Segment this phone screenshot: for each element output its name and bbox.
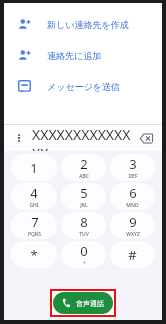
button[interactable]: 0 [61, 241, 106, 268]
staticText: 1 [30, 159, 38, 177]
staticText: WXYZ [126, 231, 140, 238]
staticText: MNO [126, 202, 139, 209]
button[interactable]: 8 [61, 212, 106, 239]
staticText: + [83, 260, 86, 267]
staticText: GHI [29, 202, 39, 209]
staticText: PQRS [28, 231, 41, 238]
staticText: JKL [80, 202, 88, 209]
staticText: 9 [129, 213, 137, 231]
staticText: 5 [80, 184, 88, 202]
staticText: 3 [129, 155, 137, 173]
button[interactable]: 9 [110, 212, 155, 239]
button[interactable]: 音声通話 [53, 292, 113, 314]
button[interactable]: 2 [61, 154, 106, 181]
button[interactable]: 連絡先に追加 [4, 40, 162, 71]
staticText: 0 [80, 242, 88, 260]
button[interactable]: 3 [110, 154, 155, 181]
staticText: 7 [31, 213, 39, 231]
button[interactable]: Backspace [138, 130, 154, 146]
staticText: 2 [80, 155, 88, 173]
staticText: # [128, 246, 137, 264]
button[interactable]: * [11, 241, 57, 268]
staticText: XXXXXXXXXXXXXX [32, 125, 138, 151]
staticText: 4 [30, 184, 38, 202]
button[interactable]: 5 [61, 183, 106, 210]
staticText: DEF [128, 173, 138, 180]
staticText: * [30, 246, 38, 264]
staticText: メッセージを送信 [47, 81, 121, 92]
staticText: 音声通話 [76, 299, 104, 308]
button[interactable]: メッセージを送信 [4, 71, 162, 102]
staticText: 連絡先に追加 [47, 50, 102, 61]
staticText: TUV [79, 231, 89, 238]
button[interactable]: # [110, 241, 155, 268]
button[interactable]: 6 [110, 183, 155, 210]
button[interactable]: 新しい連絡先を作成 [4, 9, 162, 40]
button[interactable]: 1 [11, 154, 57, 181]
staticText: 8 [80, 213, 88, 231]
staticText: ABC [79, 173, 89, 180]
staticText: 新しい連絡先を作成 [47, 19, 129, 30]
button[interactable]: More options [12, 131, 26, 145]
button[interactable]: 7 [11, 212, 57, 239]
staticText: 6 [129, 184, 137, 202]
button[interactable]: 4 [11, 183, 57, 210]
